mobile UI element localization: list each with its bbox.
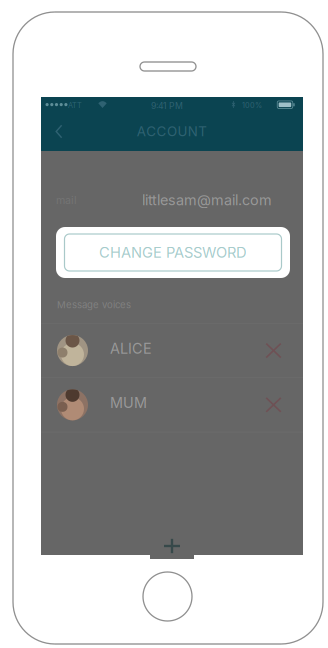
staticText: 9:41 PM: [151, 100, 183, 111]
staticText: Message voices: [57, 299, 131, 311]
staticText: MUM: [110, 394, 147, 411]
staticText: ATT: [68, 101, 82, 110]
staticText: ALICE: [110, 340, 152, 357]
button[interactable]: Back: [41, 112, 77, 151]
staticText: littlesam@mail.com: [142, 191, 272, 209]
button[interactable]: MUM: [41, 378, 303, 432]
staticText: 100%: [242, 101, 262, 110]
button[interactable]: Add voice: [150, 533, 194, 559]
button[interactable]: CHANGE PASSWORD: [64, 234, 281, 271]
staticText: ACCOUNT: [137, 123, 207, 139]
button[interactable]: ALICE: [41, 324, 303, 377]
staticText: CHANGE PASSWORD: [99, 244, 247, 261]
staticText: mail: [56, 193, 77, 206]
